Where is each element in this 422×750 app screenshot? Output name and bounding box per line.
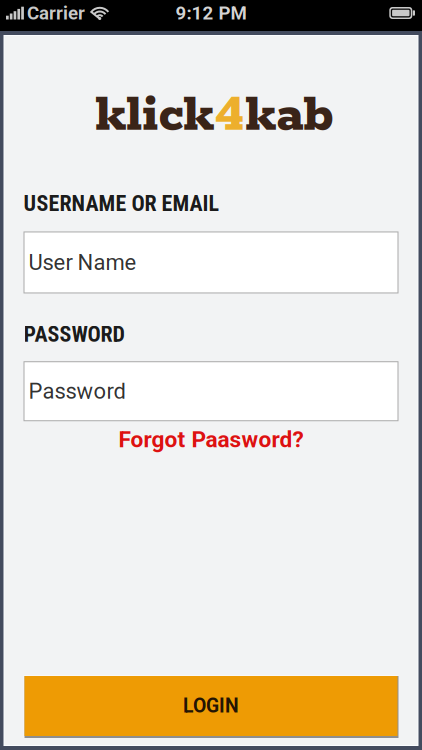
button[interactable]: User Name	[23, 231, 398, 293]
staticText: Forgot Paasword?	[118, 426, 303, 453]
staticText: USERNAME OR EMAIL	[23, 191, 219, 216]
staticText: kab	[245, 84, 333, 148]
button[interactable]: Forgot Paasword?	[118, 426, 303, 453]
staticText: User Name	[28, 250, 136, 275]
staticText: Password	[28, 378, 125, 404]
staticText: 4	[214, 84, 245, 148]
button[interactable]: Password	[23, 361, 398, 421]
staticText: 9:12 PM	[175, 2, 246, 24]
staticText: PASSWORD	[23, 321, 124, 347]
staticText: LOGIN	[183, 695, 239, 717]
staticText: Carrier	[27, 2, 85, 24]
staticText: klick	[95, 84, 214, 148]
button[interactable]: LOGIN	[23, 675, 398, 738]
